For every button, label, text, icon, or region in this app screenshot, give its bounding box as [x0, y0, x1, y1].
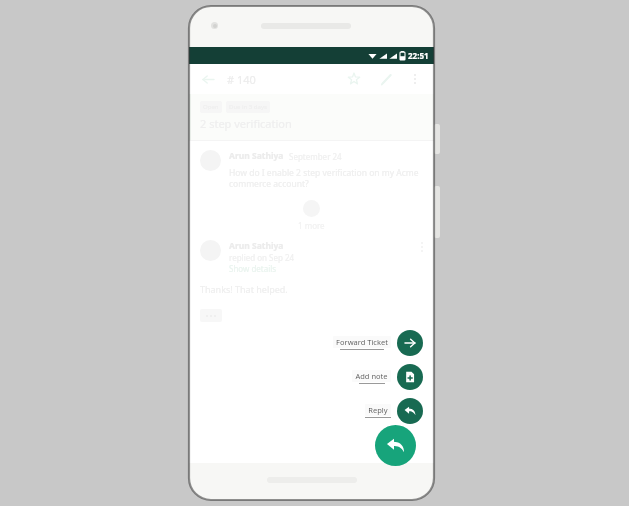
- staticText: Add note: [355, 371, 388, 381]
- staticText: How do I enable 2 step verification on m…: [229, 167, 419, 189]
- staticText: 1 more: [298, 220, 325, 231]
- staticText: Reply: [368, 405, 388, 415]
- staticText: September 24: [289, 151, 342, 162]
- staticText: 2 step verification: [200, 116, 292, 131]
- button[interactable]: Message options: [421, 242, 423, 252]
- staticText: # 140: [227, 72, 256, 87]
- button[interactable]: Reply: [365, 398, 423, 424]
- staticText: Arun Sathiya: [229, 240, 284, 252]
- button[interactable]: Forward Ticket: [333, 330, 423, 356]
- staticText: Arun Sathiya: [229, 150, 284, 162]
- button[interactable]: Back: [199, 70, 217, 88]
- button[interactable]: Star: [344, 69, 364, 89]
- button[interactable]: More options: [406, 70, 424, 88]
- staticText: 22:51: [408, 50, 429, 61]
- button[interactable]: Add note: [352, 364, 423, 390]
- button[interactable]: Expand more messages: [303, 200, 320, 217]
- button[interactable]: Reply actions: [375, 425, 416, 466]
- staticText: Thanks! That helped.: [200, 283, 288, 295]
- button[interactable]: Show details: [229, 263, 277, 274]
- staticText: Forward Ticket: [336, 337, 388, 347]
- button[interactable]: Edit: [376, 69, 396, 89]
- staticText: replied on Sep 24: [229, 252, 295, 263]
